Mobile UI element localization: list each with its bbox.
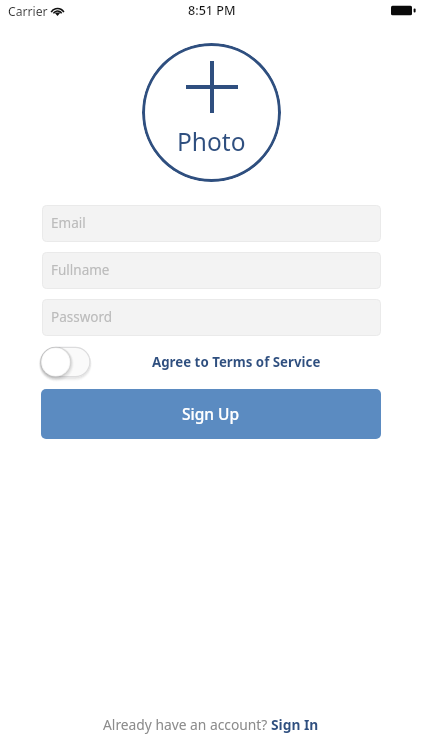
staticText: Email	[51, 214, 86, 232]
button[interactable]: Sign In	[271, 715, 319, 734]
button[interactable]: Fullname	[42, 252, 381, 289]
button[interactable]: Add photo	[142, 43, 281, 182]
staticText: 8:51 PM	[188, 2, 236, 19]
staticText: Password	[51, 308, 113, 326]
staticText: Photo	[177, 125, 246, 158]
staticText: Sign In	[271, 715, 319, 734]
staticText: Fullname	[51, 261, 110, 279]
button[interactable]: Password	[42, 299, 381, 336]
button[interactable]: Email	[42, 205, 381, 242]
button[interactable]: Sign Up	[41, 389, 381, 439]
staticText: Sign Up	[182, 403, 240, 424]
button[interactable]: Agree to Terms of Service toggle	[40, 345, 94, 379]
staticText: Agree to Terms of Service	[152, 353, 321, 371]
staticText: Carrier	[8, 3, 48, 20]
staticText: Already have an account?	[103, 715, 271, 734]
